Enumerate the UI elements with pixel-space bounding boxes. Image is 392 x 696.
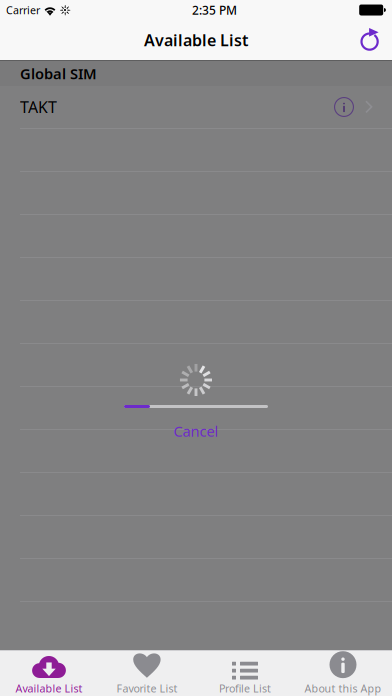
- button[interactable]: Profile List: [196, 650, 294, 696]
- staticText: Profile List: [219, 681, 271, 695]
- button[interactable]: Favorite List: [98, 650, 196, 696]
- button[interactable]: Available List: [0, 650, 98, 696]
- staticText: Cancel: [173, 421, 218, 441]
- button[interactable]: About this App: [294, 650, 392, 696]
- staticText: Favorite List: [116, 681, 177, 695]
- staticText: Global SIM: [20, 64, 97, 83]
- button[interactable]: Cancel: [136, 421, 256, 441]
- staticText: Available List: [15, 681, 82, 695]
- staticText: Available List: [144, 29, 248, 51]
- button[interactable]: TAKT: [0, 86, 392, 128]
- staticText: 2:35 PM: [192, 2, 237, 18]
- staticText: Carrier: [6, 3, 40, 17]
- button[interactable]: Refresh: [348, 20, 392, 60]
- staticText: TAKT: [20, 96, 57, 118]
- staticText: About this App: [304, 681, 381, 695]
